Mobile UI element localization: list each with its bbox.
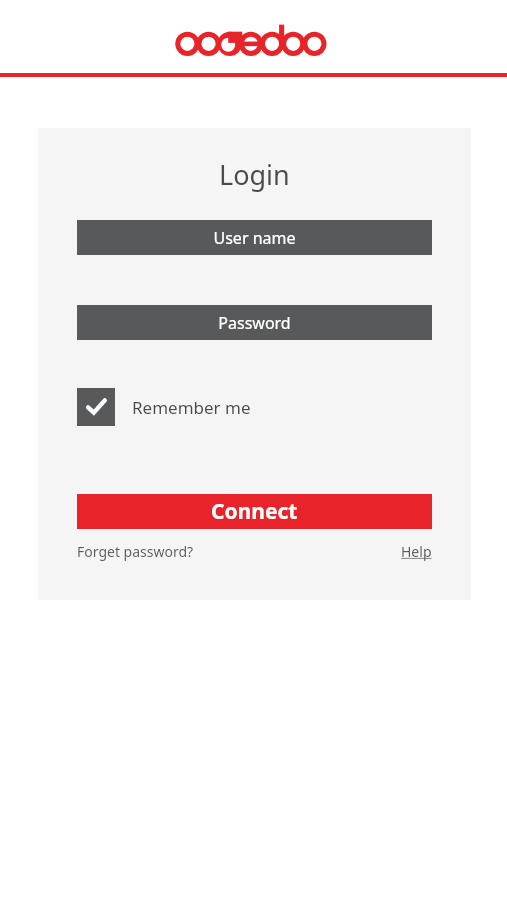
staticText: Connect	[211, 497, 298, 526]
button[interactable]: Connect	[77, 494, 432, 529]
button[interactable]: Remember me	[77, 388, 251, 426]
button[interactable]: Help	[401, 542, 432, 561]
button[interactable]: Forget password?	[77, 542, 194, 561]
button[interactable]: Password	[77, 305, 432, 340]
staticText: Remember me	[132, 396, 251, 419]
other: ooredoo	[175, 24, 333, 56]
staticText: User name	[213, 227, 296, 249]
button[interactable]: User name	[77, 220, 432, 255]
staticText: Password	[218, 312, 291, 334]
staticText: Login	[219, 156, 290, 193]
